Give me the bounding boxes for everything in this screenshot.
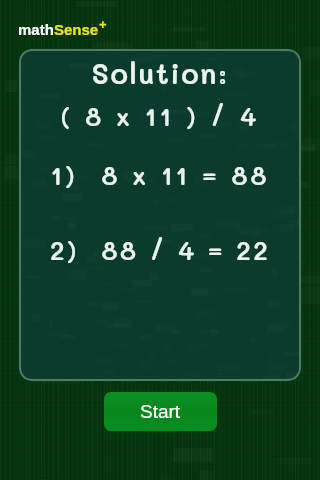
- button[interactable]: math: [18, 21, 107, 38]
- staticText: 2) 88 / 4 = 22: [19, 233, 301, 267]
- staticText: Start: [140, 401, 181, 422]
- staticText: math: [18, 21, 54, 38]
- staticText: Sense: [54, 21, 99, 38]
- staticText: Solution:: [19, 54, 301, 92]
- staticText: ( 8 x 11 ) / 4: [19, 99, 301, 133]
- staticText: +: [99, 17, 107, 32]
- staticText: 1) 8 x 11 = 88: [19, 158, 301, 192]
- button[interactable]: Start: [104, 392, 217, 431]
